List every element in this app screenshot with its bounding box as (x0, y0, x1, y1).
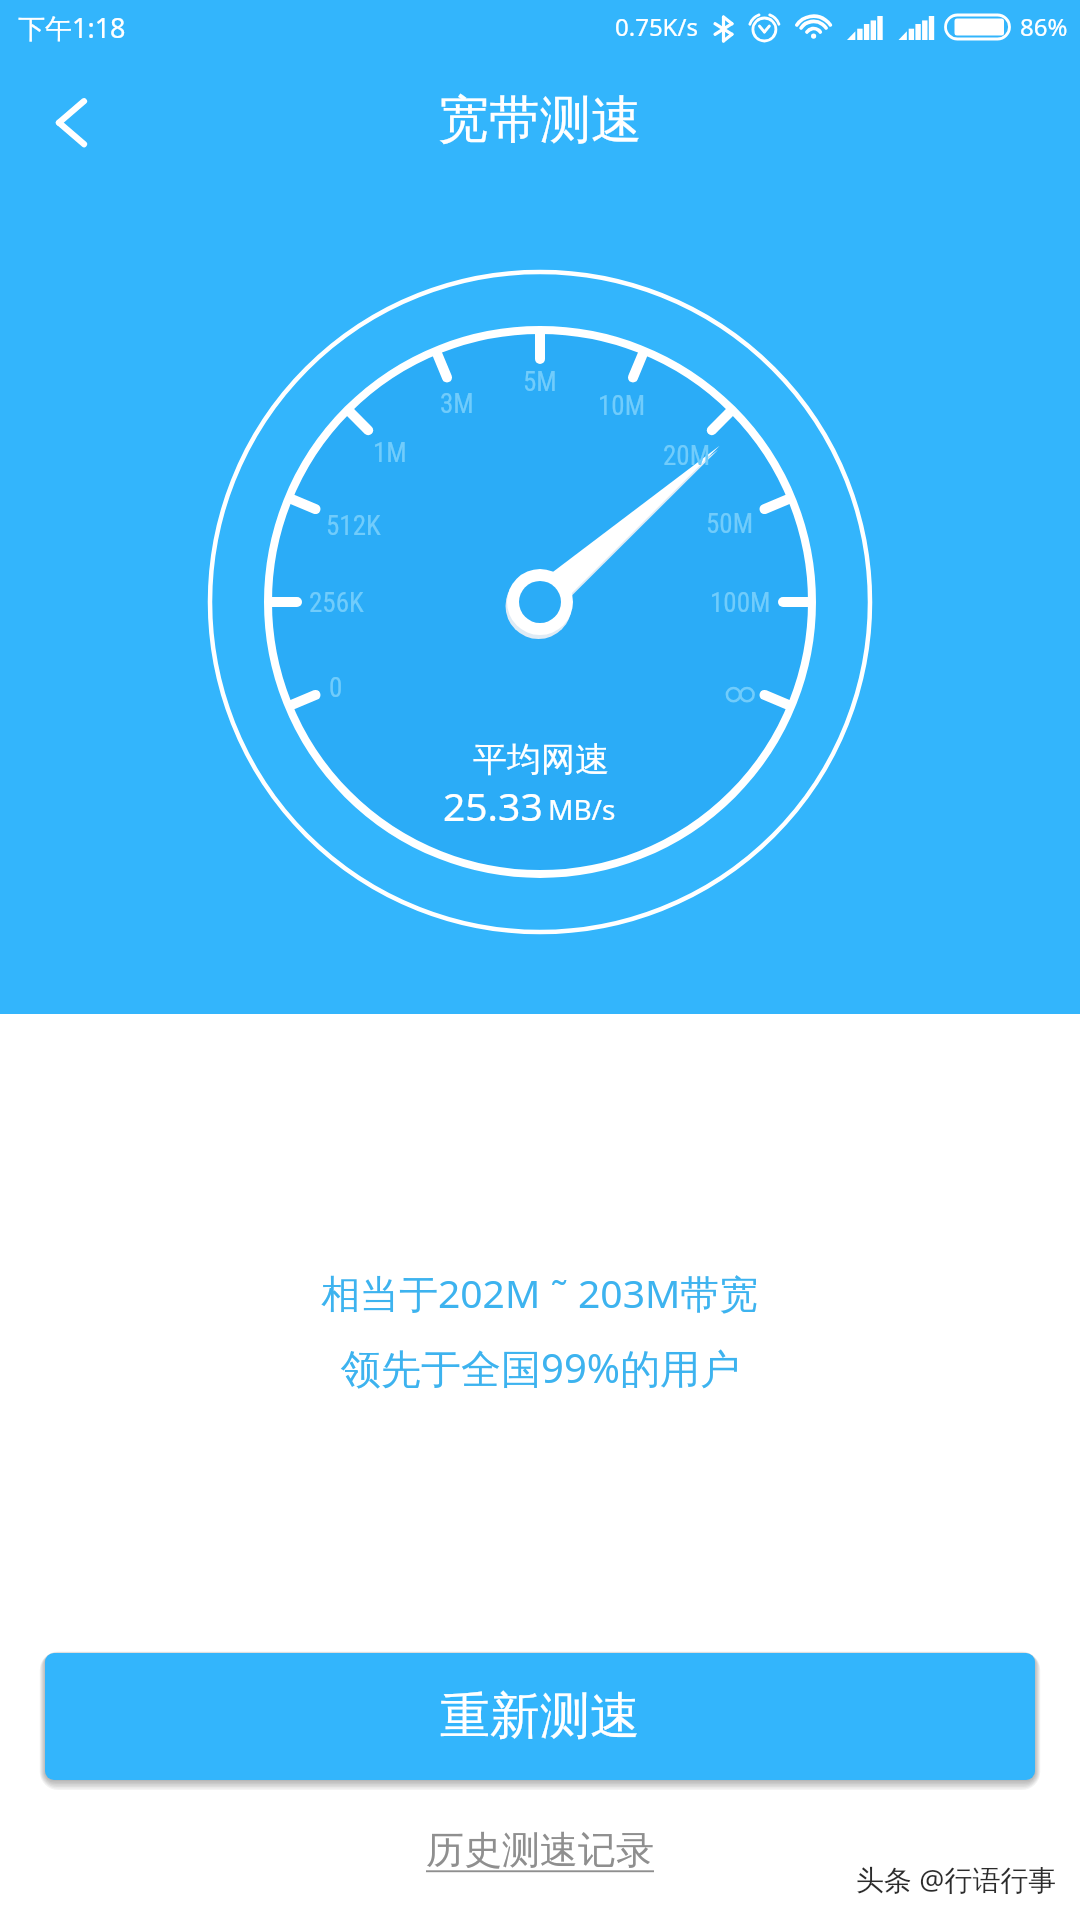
staticText: 头条 @行语行事 (856, 1860, 1057, 1898)
staticText: 1M (373, 437, 407, 469)
button[interactable]: 重新测速 (45, 1653, 1035, 1780)
staticText: 平均网速 (473, 738, 609, 781)
staticText: 0 (329, 672, 343, 704)
staticText: 宽带测速 (438, 88, 642, 152)
staticText: 历史测速记录 (426, 1826, 654, 1874)
staticText: 重新测速 (440, 1685, 640, 1748)
staticText: 50M (706, 508, 754, 540)
staticText: 25.33 (443, 779, 543, 832)
staticText: 86% (1020, 10, 1068, 43)
staticText: 512K (326, 510, 381, 542)
staticText: 256K (309, 587, 364, 619)
button[interactable]: 历史测速记录 (416, 1820, 664, 1880)
staticText: 相当于202M ˜ 203M带宽 (321, 1266, 759, 1319)
staticText: ∞ (729, 672, 753, 704)
staticText: 下午1:18 (18, 9, 126, 46)
staticText: 5M (523, 366, 557, 398)
staticText: 10M (598, 390, 646, 422)
staticText: 20M (663, 440, 711, 472)
button[interactable]: Back (22, 73, 122, 173)
staticText: 领先于全国99%的用户 (341, 1340, 740, 1395)
staticText: 3M (440, 388, 474, 420)
staticText: 0.75K/s (615, 10, 698, 43)
staticText: MB/s (548, 790, 616, 828)
staticText: 100M (710, 587, 771, 619)
